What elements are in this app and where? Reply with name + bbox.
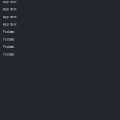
staticText: App Store	[3, 23, 17, 26]
staticText: Podcasts	[3, 38, 14, 41]
staticText: App Store	[3, 7, 17, 11]
staticText: App Store	[3, 0, 17, 3]
staticText: App Store	[3, 15, 17, 19]
staticText: Podcasts	[3, 30, 14, 34]
staticText: Podcasts	[3, 53, 14, 56]
staticText: Podcasts	[3, 45, 14, 49]
